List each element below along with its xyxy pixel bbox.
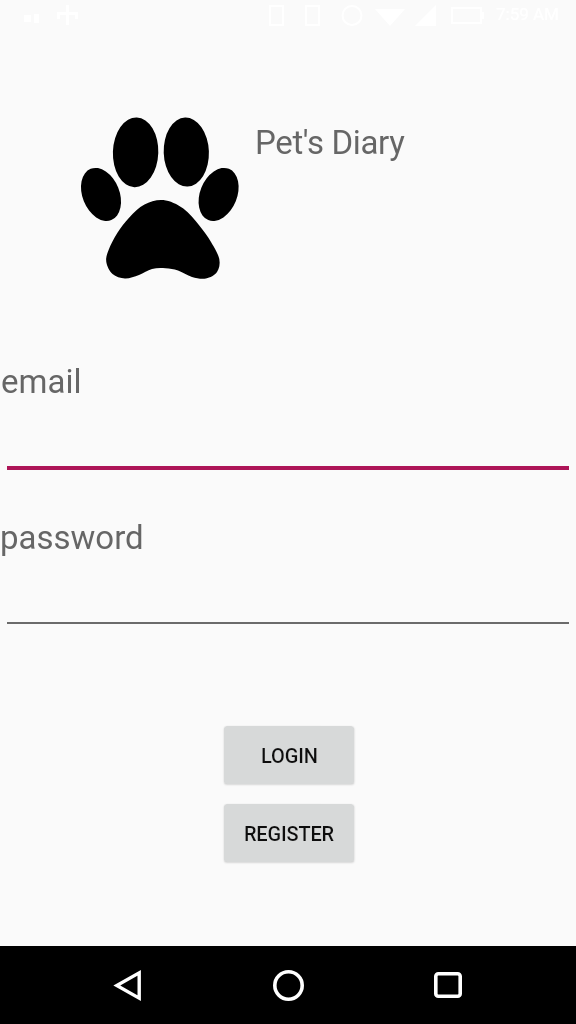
staticText: Pet's Diary	[255, 123, 405, 162]
button[interactable]: password	[0, 504, 576, 624]
button[interactable]: Back	[78, 946, 178, 1024]
button[interactable]: Home	[238, 946, 338, 1024]
button[interactable]: LOGIN	[224, 726, 354, 784]
staticText: email	[1, 362, 82, 401]
button[interactable]: REGISTER	[224, 804, 354, 862]
staticText: LOGIN	[261, 744, 318, 767]
button[interactable]: email	[0, 348, 576, 470]
button[interactable]: Recents	[398, 946, 498, 1024]
staticText: password	[0, 518, 144, 557]
staticText: REGISTER	[244, 822, 334, 845]
